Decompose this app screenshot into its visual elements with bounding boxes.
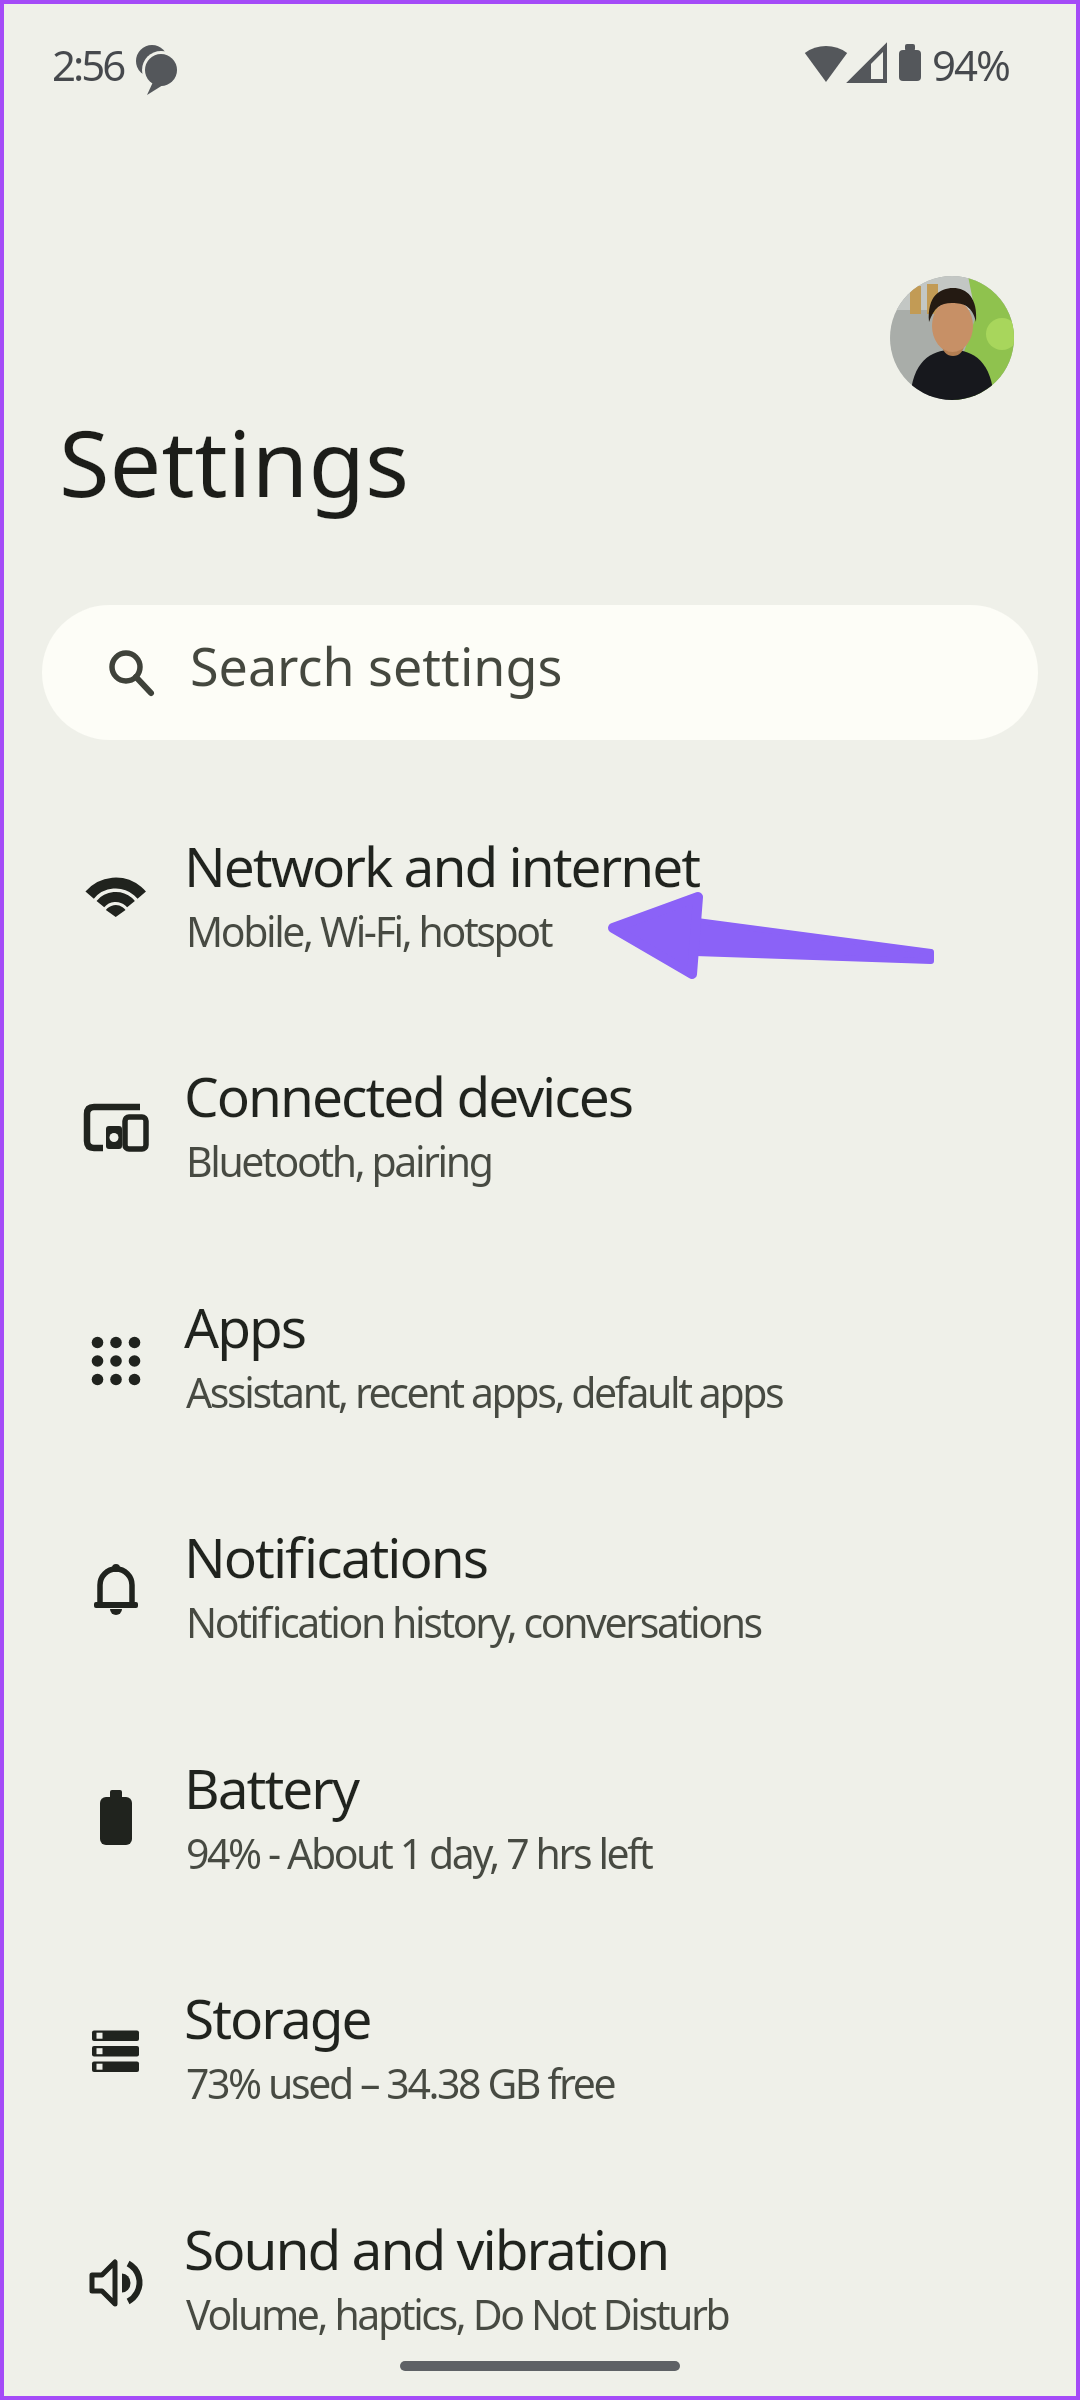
- staticText: Sound and vibration: [184, 2211, 669, 2286]
- button[interactable]: Notifications: [0, 1461, 1080, 1686]
- button[interactable]: Battery: [0, 1692, 1080, 1917]
- staticText: 73% used – 34.38 GB free: [186, 2055, 615, 2111]
- staticText: Volume, haptics, Do Not Disturb: [186, 2286, 729, 2342]
- button[interactable]: Apps: [0, 1231, 1080, 1456]
- button[interactable]: Storage: [0, 1922, 1080, 2147]
- staticText: Notifications: [184, 1519, 488, 1594]
- staticText: Notification history, conversations: [186, 1594, 761, 1650]
- staticText: 94% - About 1 day, 7 hrs left: [186, 1825, 652, 1881]
- staticText: 2:56: [52, 36, 124, 93]
- staticText: Battery: [184, 1750, 359, 1825]
- staticText: Settings: [59, 399, 410, 524]
- staticText: Mobile, Wi-Fi, hotspot: [186, 903, 552, 959]
- staticText: Assistant, recent apps, default apps: [186, 1364, 783, 1420]
- staticText: Storage: [184, 1980, 371, 2055]
- button[interactable]: Search settings: [42, 605, 1038, 740]
- staticText: Bluetooth, pairing: [186, 1133, 492, 1189]
- button[interactable]: Connected devices: [0, 1000, 1080, 1225]
- staticText: Network and internet: [184, 828, 700, 903]
- button[interactable]: [890, 276, 1014, 400]
- button[interactable]: Network and internet: [0, 770, 1080, 995]
- button[interactable]: Sound and vibration: [0, 2153, 1080, 2378]
- staticText: Search settings: [190, 630, 563, 701]
- staticText: Apps: [184, 1289, 306, 1364]
- staticText: Connected devices: [184, 1058, 633, 1133]
- staticText: 94%: [932, 36, 1009, 93]
